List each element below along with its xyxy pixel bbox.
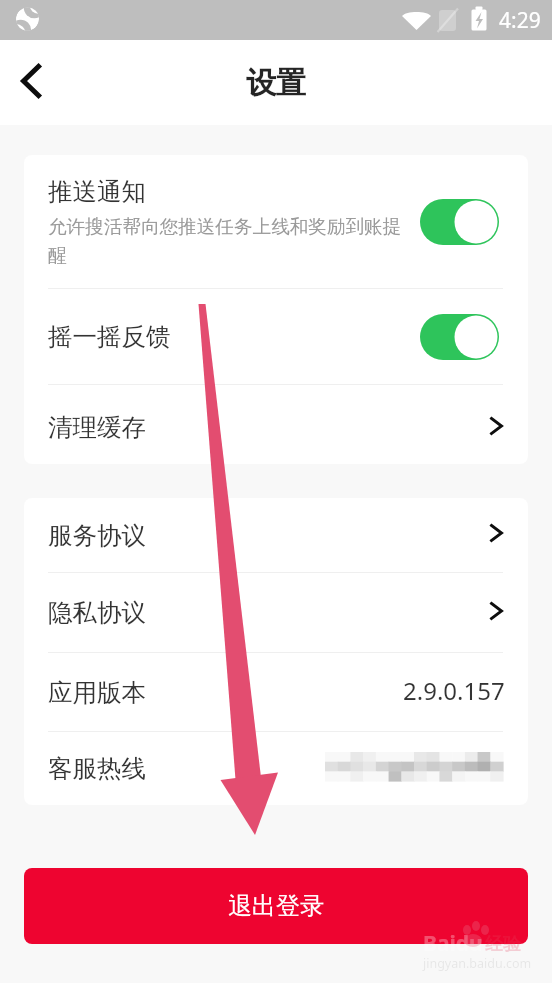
button[interactable]: 退出登录: [24, 868, 528, 944]
staticText: 摇一摇反馈: [48, 321, 420, 352]
staticText: 经验: [485, 933, 521, 956]
button[interactable]: [420, 314, 499, 360]
staticText: 退出登录: [228, 891, 324, 921]
button[interactable]: 隐私协议: [24, 573, 528, 652]
staticText: 设置: [246, 64, 306, 102]
button[interactable]: 清理缓存: [24, 385, 528, 464]
staticText: 4:29: [499, 6, 541, 35]
button[interactable]: Back: [0, 50, 62, 112]
button[interactable]: 应用版本: [24, 653, 528, 731]
staticText: jingyan.baidu.com: [423, 955, 532, 972]
staticText: Baidu: [423, 929, 483, 958]
button[interactable]: 摇一摇反馈: [24, 289, 528, 384]
button[interactable]: 推送通知: [24, 155, 528, 288]
button[interactable]: 服务协议: [24, 498, 528, 572]
staticText: 隐私协议: [48, 597, 490, 628]
staticText: 推送通知: [48, 176, 146, 207]
staticText: 客服热线: [48, 753, 325, 784]
staticText: 2.9.0.157: [403, 674, 505, 707]
staticText: 允许搜活帮向您推送任务上线和奖励到账提醒: [48, 215, 408, 267]
staticText: 应用版本: [48, 677, 403, 708]
button[interactable]: [420, 199, 499, 245]
staticText: 清理缓存: [48, 412, 490, 443]
staticText: 服务协议: [48, 520, 490, 551]
button[interactable]: 客服热线: [24, 732, 528, 805]
